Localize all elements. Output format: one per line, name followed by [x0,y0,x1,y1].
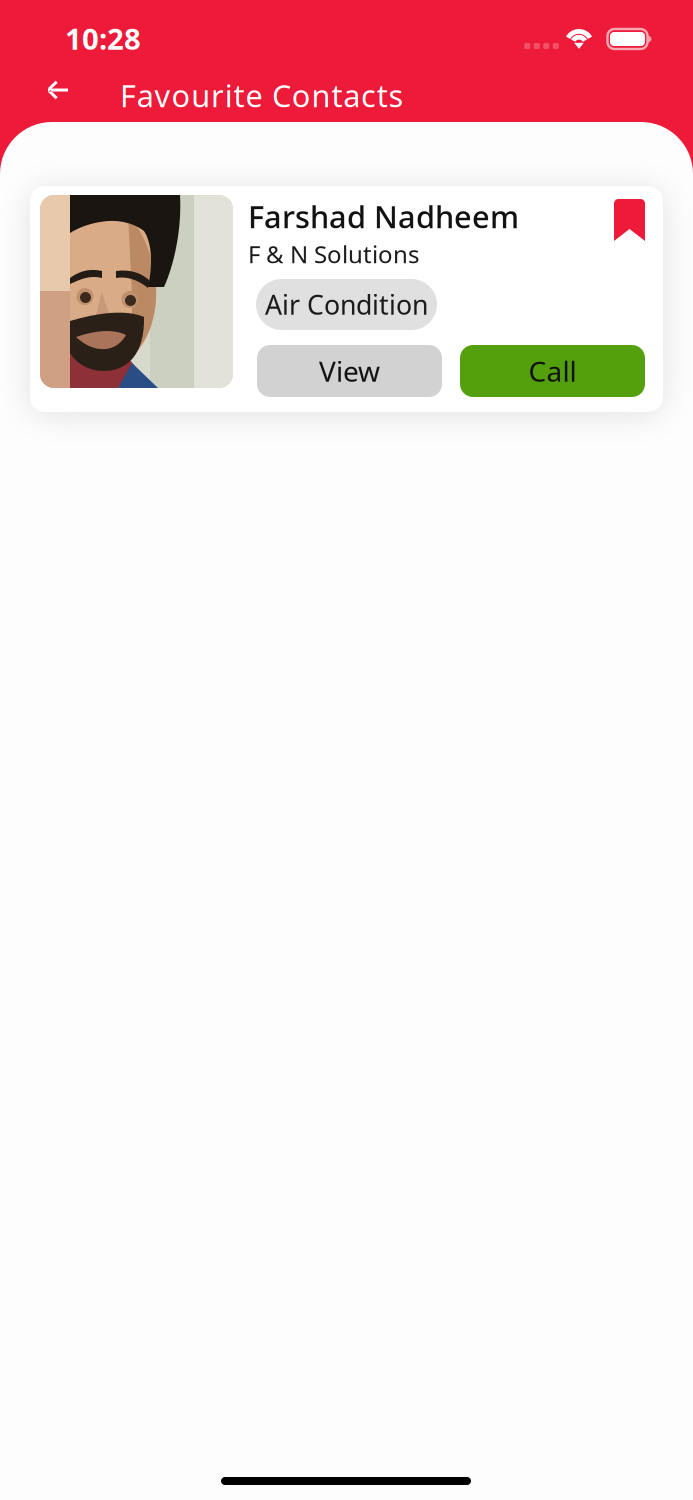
staticText: Air Condition [265,287,428,322]
staticText: View [319,352,380,390]
staticText: 10:28 [65,19,141,58]
button[interactable]: Back [31,63,85,117]
staticText: Favourite Contacts [120,75,404,116]
staticText: Call [528,352,576,390]
staticText: F & N Solutions [248,238,419,270]
staticText: Farshad Nadheem [248,196,519,237]
button[interactable]: Call [460,345,645,397]
button[interactable]: View [257,345,442,397]
button[interactable]: Air Condition [256,279,437,330]
button[interactable]: Bookmark [614,199,645,241]
